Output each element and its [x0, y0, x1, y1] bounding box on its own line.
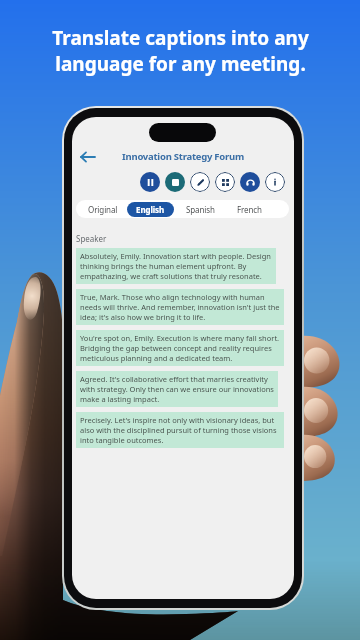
button[interactable]: Spanish	[179, 200, 221, 218]
staticText: Agreed. It's collaborative effort that m…	[80, 374, 275, 404]
staticText: True, Mark. Those who align technology w…	[80, 292, 281, 322]
staticText: language for any meeting.	[55, 51, 306, 77]
button[interactable]: Apps	[215, 172, 235, 192]
staticText: French	[237, 204, 262, 215]
button[interactable]: Precisely. Let's inspire not only with v…	[76, 412, 284, 448]
button[interactable]: English	[127, 202, 174, 217]
staticText: Innovation Strategy Forum	[72, 150, 294, 163]
button[interactable]: Agreed. It's collaborative effort that m…	[76, 371, 278, 407]
button[interactable]: Original	[82, 200, 124, 218]
button[interactable]: True, Mark. Those who align technology w…	[76, 289, 284, 325]
staticText: Precisely. Let's inspire not only with v…	[80, 415, 281, 445]
button[interactable]: French	[231, 200, 267, 218]
staticText: You're spot on, Emily. Execution is wher…	[80, 333, 281, 363]
button[interactable]: Back	[78, 147, 98, 167]
staticText: Absolutely, Emily. Innovation start with…	[80, 251, 273, 281]
button[interactable]: You're spot on, Emily. Execution is wher…	[76, 330, 284, 366]
button[interactable]: Edit	[190, 172, 210, 192]
button[interactable]: Info	[265, 172, 285, 192]
button[interactable]: Audio	[240, 172, 260, 192]
button[interactable]: Pause	[140, 172, 160, 192]
staticText: Translate captions into any	[52, 25, 309, 51]
button[interactable]: Stop	[165, 172, 185, 192]
staticText: Speaker	[76, 233, 107, 244]
staticText: English	[136, 204, 165, 215]
button[interactable]: Absolutely, Emily. Innovation start with…	[76, 248, 276, 284]
staticText: Spanish	[186, 204, 215, 215]
staticText: Original	[88, 204, 118, 215]
